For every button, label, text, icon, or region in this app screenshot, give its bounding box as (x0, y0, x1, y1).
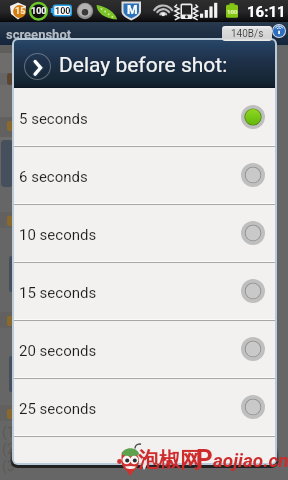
staticText: (3 (2, 458, 15, 475)
staticText: (2 (2, 441, 15, 458)
staticText: 25 seconds (19, 400, 97, 418)
staticText: 140B/s (231, 28, 264, 40)
button[interactable]: 25 seconds (14, 379, 275, 437)
button[interactable]: 6 seconds (14, 147, 275, 205)
staticText: (1 (2, 424, 15, 441)
button[interactable]: 20 seconds (14, 321, 275, 379)
staticText: 15 (15, 6, 26, 17)
staticText: 16:11 (247, 3, 286, 21)
button[interactable]: Network monitor (273, 25, 285, 37)
button[interactable]: 10 seconds (14, 205, 275, 263)
staticText: M (127, 3, 138, 17)
staticText: 100 (227, 8, 238, 15)
staticText: 20 seconds (19, 342, 97, 360)
staticText: 15 seconds (19, 284, 97, 302)
staticText: 10 seconds (19, 226, 97, 244)
staticText: 泡椒网 (138, 447, 201, 473)
staticText: 100 (31, 6, 47, 17)
button[interactable]: 5 seconds (14, 89, 275, 147)
button[interactable]: Delay before shot: (14, 40, 275, 88)
staticText: 100 (55, 6, 71, 17)
staticText: 6 seconds (19, 168, 88, 186)
button[interactable]: 15 seconds (14, 263, 275, 321)
staticText: Delay before shot: (59, 53, 228, 78)
staticText: screenshot (6, 27, 72, 42)
staticText: P (196, 444, 213, 474)
staticText: 5 seconds (19, 110, 88, 128)
staticText: aojiao.cn (213, 449, 288, 471)
button[interactable]: 140B/s (222, 26, 272, 41)
